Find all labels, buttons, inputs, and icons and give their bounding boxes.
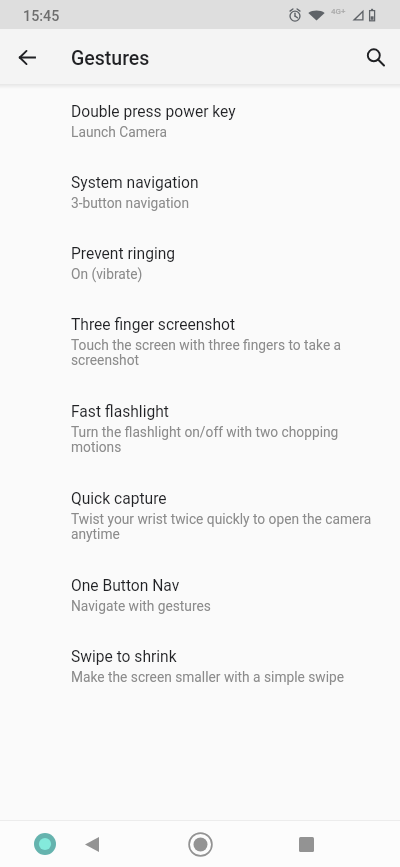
button[interactable]: Back: [70, 822, 114, 866]
staticText: Fast flashlight: [71, 403, 169, 421]
button[interactable]: Three finger screenshot: [0, 299, 400, 386]
staticText: Prevent ringing: [71, 245, 176, 263]
staticText: 4G+: [331, 7, 346, 16]
staticText: 15:45: [23, 8, 60, 25]
staticText: 3-button navigation: [71, 195, 189, 211]
button[interactable]: One Button Nav: [0, 560, 400, 631]
button[interactable]: Navigate up: [5, 35, 49, 79]
button[interactable]: Swipe to shrink: [0, 631, 400, 702]
button[interactable]: Quick capture: [0, 473, 400, 560]
staticText: Double press power key: [71, 103, 236, 121]
staticText: Twist your wrist twice quickly to open t…: [71, 511, 374, 543]
staticText: Navigate with gestures: [71, 598, 211, 614]
button[interactable]: Home: [178, 822, 222, 866]
staticText: Make the screen smaller with a simple sw…: [71, 669, 344, 685]
staticText: Gestures: [71, 47, 150, 70]
button[interactable]: Prevent ringing: [0, 228, 400, 299]
staticText: Three finger screenshot: [71, 316, 236, 334]
staticText: One Button Nav: [71, 577, 180, 595]
staticText: Turn the flashlight on/off with two chop…: [71, 424, 374, 456]
staticText: On (vibrate): [71, 266, 143, 282]
staticText: System navigation: [71, 174, 199, 192]
button[interactable]: Search: [354, 36, 398, 80]
staticText: Touch the screen with three fingers to t…: [71, 337, 374, 369]
button[interactable]: Assistant: [23, 822, 67, 866]
button[interactable]: Fast flashlight: [0, 386, 400, 473]
button[interactable]: Double press power key: [0, 86, 400, 157]
staticText: Quick capture: [71, 490, 167, 508]
button[interactable]: System navigation: [0, 157, 400, 228]
button[interactable]: Recent apps: [284, 822, 328, 866]
staticText: Swipe to shrink: [71, 648, 177, 666]
staticText: Launch Camera: [71, 124, 167, 140]
